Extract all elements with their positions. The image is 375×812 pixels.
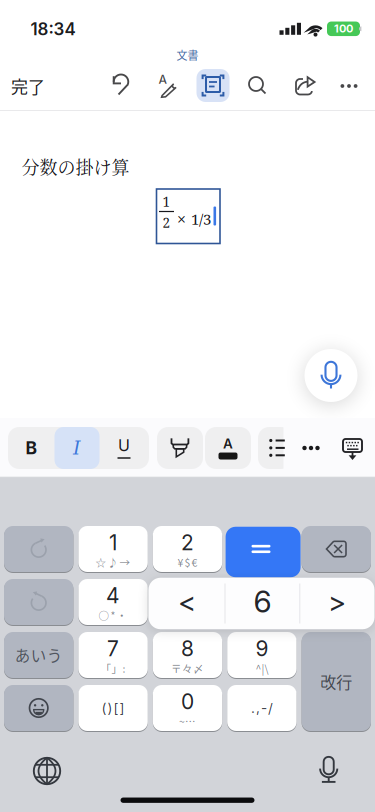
button[interactable]: Font colour: [205, 427, 251, 469]
staticText: 6: [253, 583, 271, 620]
button[interactable]: 8: [153, 633, 222, 679]
staticText: 文書: [176, 47, 198, 63]
staticText: ¥ $ €: [177, 555, 197, 570]
staticText: <: [178, 585, 196, 618]
button[interactable]: Bullet list: [263, 427, 293, 469]
button[interactable]: More tools: [294, 427, 328, 469]
staticText: 「」:: [101, 661, 126, 676]
staticText: A: [223, 435, 233, 452]
staticText: ^|\: [255, 661, 268, 676]
staticText: 7: [107, 636, 119, 661]
staticText: >: [328, 585, 346, 618]
staticText: 0: [181, 689, 194, 714]
button[interactable]: More: [332, 69, 366, 103]
button[interactable]: B: [8, 427, 54, 469]
staticText: I: [73, 437, 81, 459]
button[interactable]: Share: [287, 69, 321, 103]
staticText: あいう: [15, 644, 63, 666]
staticText: . , - /: [251, 700, 273, 716]
staticText: 100: [334, 22, 353, 35]
button[interactable]: Search: [240, 69, 274, 103]
button[interactable]: Dictation: [301, 345, 361, 405]
button[interactable]: Redo: [4, 527, 73, 573]
button[interactable]: 完了: [6, 69, 50, 103]
button[interactable]: Emoji: [4, 686, 73, 732]
button[interactable]: 9: [227, 633, 297, 679]
staticText: 1: [162, 192, 170, 211]
button[interactable]: I: [54, 427, 99, 469]
button[interactable]: Highlight: [157, 427, 203, 469]
button[interactable]: Dismiss keyboard: [335, 427, 369, 469]
staticText: 2: [162, 213, 170, 232]
staticText: 1/3: [191, 209, 211, 229]
staticText: 9: [255, 636, 268, 661]
staticText: U: [118, 436, 130, 455]
staticText: ○ * ・: [99, 608, 128, 623]
button[interactable]: 4: [78, 580, 148, 626]
button[interactable]: . , - /: [227, 686, 297, 732]
button[interactable]: 2: [153, 527, 222, 573]
button[interactable]: 0: [153, 686, 222, 732]
staticText: B: [25, 437, 37, 459]
staticText: 1: [109, 530, 117, 555]
button[interactable]: Format: [151, 69, 185, 103]
staticText: 2: [181, 530, 194, 555]
staticText: ~…: [179, 714, 196, 729]
staticText: A: [158, 72, 167, 87]
button[interactable]: 7: [78, 633, 148, 679]
staticText: 分数の掛け算: [21, 154, 129, 179]
button[interactable]: ( ) [ ]: [78, 686, 148, 732]
button[interactable]: U: [100, 427, 148, 469]
staticText: 18:34: [30, 19, 75, 39]
staticText: ×: [177, 208, 186, 230]
staticText: 完了: [11, 74, 45, 98]
button[interactable]: 1: [78, 527, 148, 573]
button[interactable]: Undo: [106, 69, 140, 103]
button[interactable]: Delete: [302, 527, 371, 573]
staticText: ( ) [ ]: [102, 700, 125, 716]
button[interactable]: あいう: [4, 633, 73, 679]
staticText: ☆ ♪ →: [96, 555, 131, 570]
button[interactable]: Dictate: [307, 748, 351, 792]
staticText: 8: [181, 636, 194, 661]
button[interactable]: Text box: [193, 65, 233, 105]
button[interactable]: Undo: [4, 580, 73, 626]
button[interactable]: 改行: [302, 633, 371, 732]
staticText: 4: [106, 583, 120, 608]
staticText: 改行: [320, 670, 352, 693]
button[interactable]: Next keyboard: [25, 749, 69, 793]
staticText: 〒々〆: [171, 661, 204, 676]
